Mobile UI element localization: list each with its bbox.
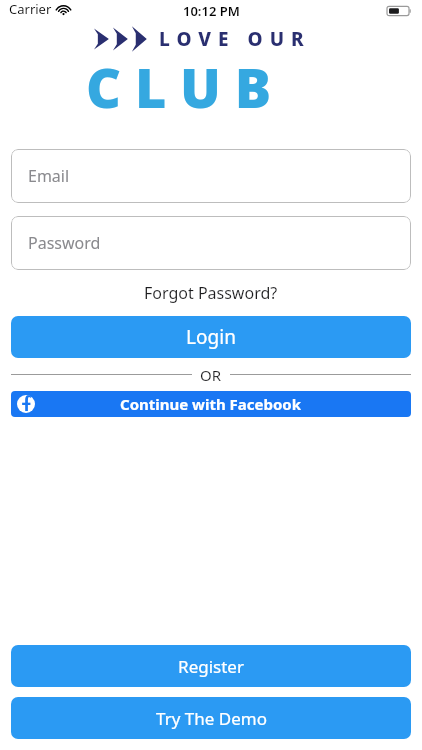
staticText: Email xyxy=(28,165,70,187)
button[interactable]: Register xyxy=(11,645,411,687)
button[interactable]: Continue with Facebook xyxy=(11,391,411,417)
button[interactable]: Email xyxy=(11,149,411,203)
staticText: Password xyxy=(28,232,101,254)
staticText: Carrier xyxy=(9,0,52,18)
button[interactable]: Login xyxy=(11,316,411,358)
staticText: Register xyxy=(178,655,244,678)
staticText: 10:12 PM xyxy=(183,2,240,20)
staticText: LOVE OUR xyxy=(159,26,311,52)
staticText: OR xyxy=(200,365,222,383)
button[interactable]: Password xyxy=(11,216,411,270)
staticText: Login xyxy=(186,324,236,350)
staticText: Try The Demo xyxy=(156,707,267,730)
staticText: CLUB xyxy=(86,50,286,124)
staticText: Continue with Facebook xyxy=(120,394,302,414)
button[interactable]: Try The Demo xyxy=(11,697,411,739)
button[interactable]: Forgot Password? xyxy=(0,282,422,304)
staticText: Forgot Password? xyxy=(144,282,278,304)
